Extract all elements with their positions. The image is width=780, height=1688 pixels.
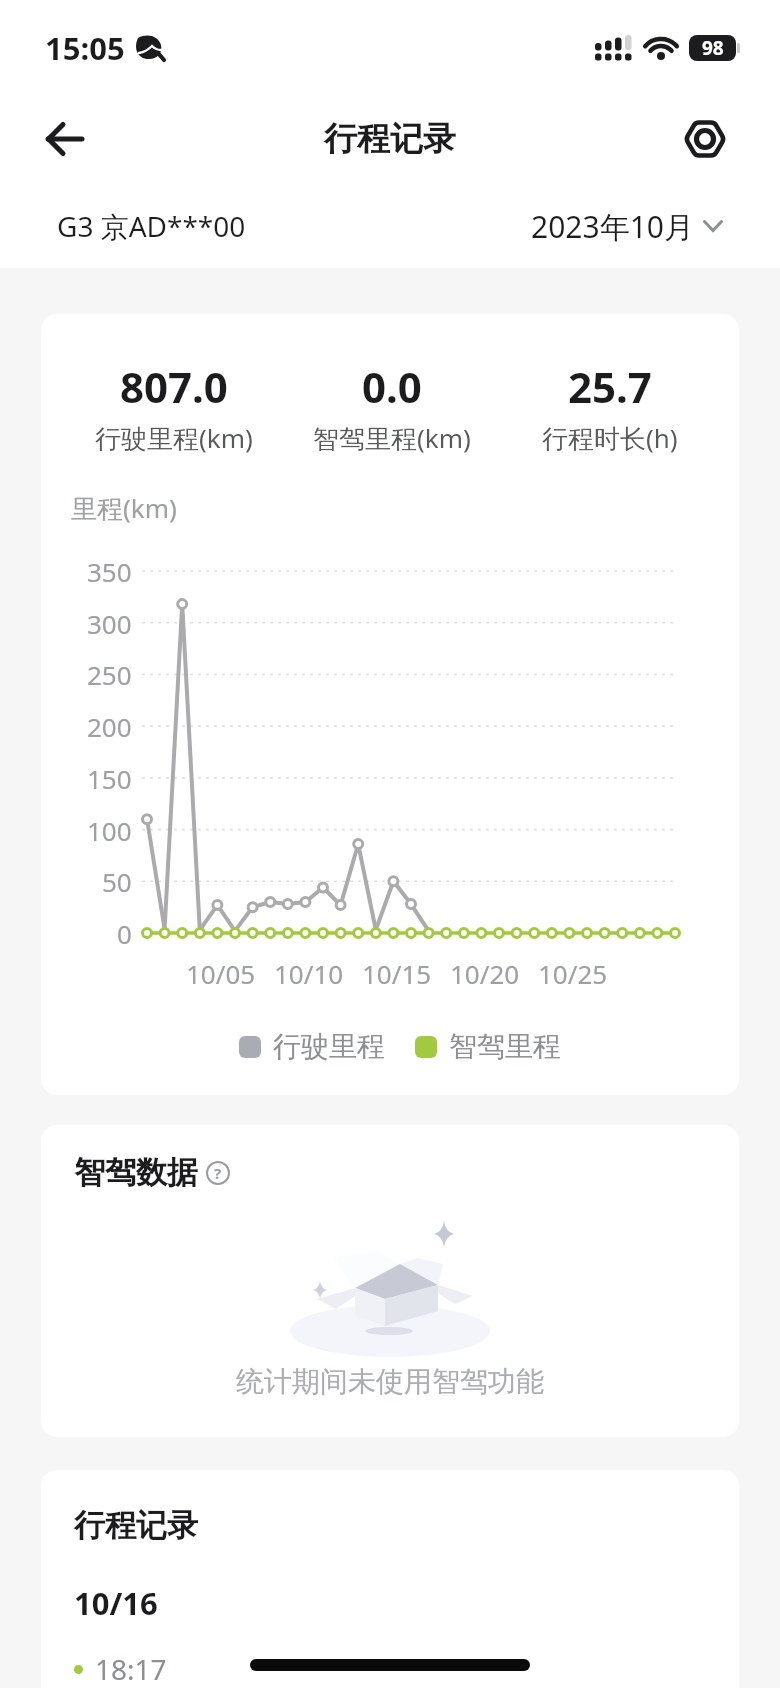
- staticText: 行驶里程(km): [95, 420, 253, 456]
- staticText: 10/25: [538, 956, 608, 991]
- staticText: 行程记录: [324, 118, 456, 160]
- staticText: 0.0: [362, 358, 422, 415]
- staticText: 行程记录: [74, 1506, 198, 1545]
- staticText: 0: [117, 916, 132, 951]
- staticText: 10/15: [362, 956, 432, 991]
- button[interactable]: [46, 122, 84, 156]
- staticText: 10/16: [74, 1582, 158, 1624]
- staticText: 行程时长(h): [542, 420, 678, 456]
- staticText: 10/20: [450, 956, 520, 991]
- staticText: 智驾里程(km): [313, 420, 471, 456]
- staticText: 100: [87, 813, 132, 848]
- staticText: 里程(km): [71, 490, 177, 526]
- staticText: 10/10: [274, 956, 344, 991]
- staticText: 25.7: [568, 358, 652, 415]
- button[interactable]: 2023年10月: [531, 206, 723, 247]
- staticText: 智驾数据: [74, 1153, 198, 1192]
- staticText: 807.0: [120, 358, 228, 415]
- staticText: 15:05: [45, 27, 125, 69]
- staticText: 250: [87, 657, 132, 692]
- staticText: 200: [87, 709, 132, 744]
- staticText: 50: [102, 864, 132, 899]
- staticText: 150: [87, 761, 132, 796]
- staticText: 2023年10月: [531, 206, 694, 247]
- staticText: ?: [214, 1163, 222, 1183]
- staticText: 10/05: [186, 956, 256, 991]
- staticText: G3 京AD***00: [57, 207, 246, 245]
- staticText: 统计期间未使用智驾功能: [41, 1364, 739, 1399]
- staticText: 300: [87, 606, 132, 641]
- button[interactable]: [685, 119, 725, 159]
- staticText: 智驾里程: [449, 1029, 561, 1064]
- staticText: 350: [87, 554, 132, 589]
- staticText: 18:17: [95, 1650, 167, 1688]
- staticText: 行驶里程: [273, 1029, 385, 1064]
- staticText: 98: [702, 35, 724, 61]
